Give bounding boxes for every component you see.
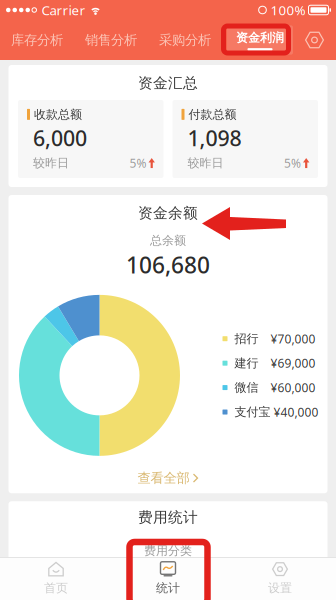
staticText: 建行 (234, 356, 258, 370)
staticText: Carrier (41, 1, 85, 19)
staticText: 费用分类 (144, 543, 192, 558)
staticText: 6,000 (33, 124, 87, 152)
button[interactable]: 采购分析 (148, 20, 222, 60)
staticText: ¥40,000 (273, 404, 318, 420)
staticText: 资金汇总 (138, 74, 198, 92)
button[interactable]: 销售分析 (74, 20, 148, 60)
button[interactable]: 统计 (112, 557, 224, 600)
staticText: 总余额 (150, 233, 186, 248)
staticText: ¥60,000 (270, 380, 315, 395)
staticText: 1,098 (187, 124, 241, 152)
staticText: 较昨日 (187, 156, 223, 170)
button[interactable]: 库存分析 (0, 20, 74, 60)
staticText: 费用统计 (138, 508, 198, 526)
staticText: 设置 (268, 581, 292, 595)
staticText: ¥70,000 (270, 331, 315, 347)
staticText: 招行 (234, 331, 258, 346)
staticText: 支付宝 (234, 405, 270, 419)
staticText: 100% (270, 1, 305, 19)
staticText: 较昨日 (33, 156, 69, 170)
staticText: 资金余额 (138, 204, 198, 222)
staticText: 采购分析 (159, 32, 211, 48)
staticText: ¥69,000 (270, 355, 315, 371)
staticText: 106,680 (126, 250, 210, 280)
button[interactable]: 更多设置 (293, 20, 336, 60)
staticText: 资金利润 (236, 30, 284, 45)
staticText: 5% (129, 155, 146, 171)
button[interactable]: 查看全部 (8, 456, 327, 493)
staticText: 5% (284, 155, 301, 171)
button[interactable]: 资金利润 (227, 25, 293, 55)
staticText: 收款总额 (34, 107, 82, 122)
staticText: 微信 (234, 380, 258, 395)
staticText: 统计 (156, 581, 180, 595)
staticText: 付款总额 (188, 107, 236, 122)
staticText: 首页 (44, 581, 68, 595)
staticText: 销售分析 (85, 32, 137, 48)
staticText: 查看全部 (137, 470, 189, 486)
button[interactable]: 首页 (0, 557, 112, 600)
button[interactable]: 设置 (224, 557, 336, 600)
staticText: 库存分析 (11, 32, 63, 48)
